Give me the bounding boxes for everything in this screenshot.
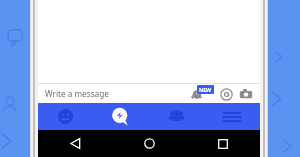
staticText: Write a message: [45, 88, 109, 99]
button[interactable]: Home: [38, 103, 93, 130]
button[interactable]: Write a message: [45, 84, 189, 103]
staticText: NEW: [199, 86, 212, 93]
button[interactable]: Back: [38, 130, 112, 157]
button[interactable]: Menu: [204, 103, 260, 130]
button[interactable]: Recent apps: [186, 130, 260, 157]
button[interactable]: Chats: [93, 103, 148, 130]
button[interactable]: Mention: [218, 86, 234, 102]
button[interactable]: Stickers, new: [189, 85, 215, 102]
button[interactable]: Camera: [237, 85, 255, 103]
button[interactable]: Home: [112, 130, 186, 157]
button[interactable]: People: [148, 103, 204, 130]
